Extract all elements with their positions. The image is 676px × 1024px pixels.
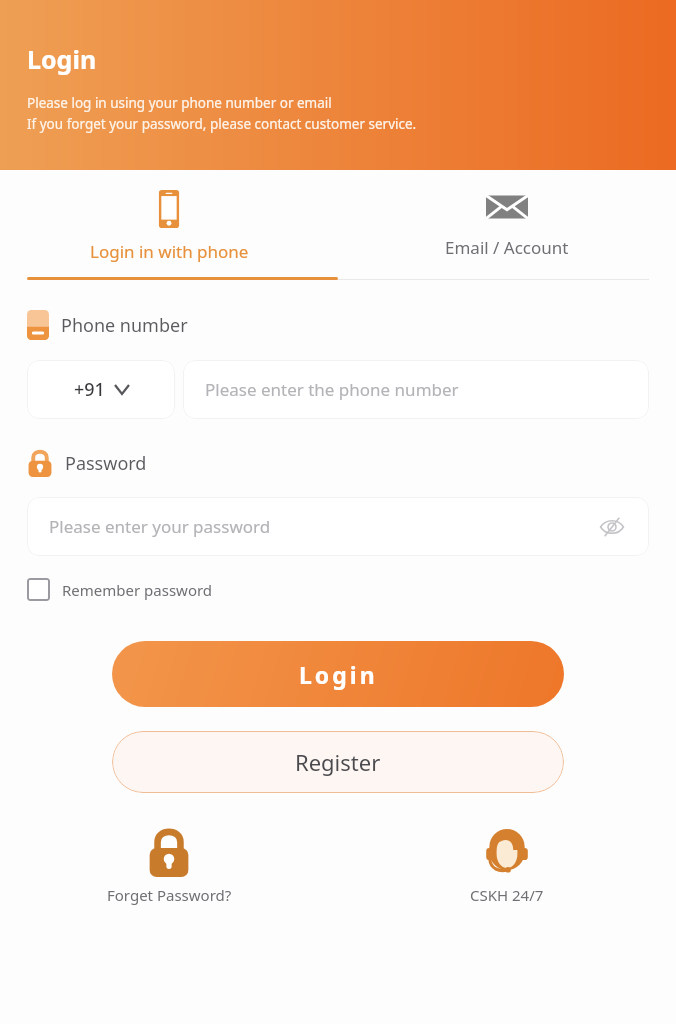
staticText: +91 xyxy=(74,377,105,402)
button[interactable]: Register xyxy=(112,731,564,793)
staticText: Phone number xyxy=(61,313,188,338)
staticText: Register xyxy=(295,747,381,777)
button[interactable]: Email / Account xyxy=(338,184,676,265)
staticText: Remember password xyxy=(62,580,213,600)
staticText: CSKH 24/7 xyxy=(470,885,544,905)
button[interactable]: Remember password xyxy=(27,578,213,601)
staticText: Please log in using your phone number or… xyxy=(27,94,332,112)
staticText: Please enter the phone number xyxy=(205,378,459,401)
button[interactable]: Forget Password? xyxy=(0,827,338,905)
staticText: Login xyxy=(299,659,378,690)
button[interactable]: Show password xyxy=(597,512,627,542)
staticText: Forget Password? xyxy=(107,885,232,905)
staticText: Password xyxy=(65,451,147,476)
button[interactable]: Login in with phone xyxy=(0,184,338,269)
button[interactable]: CSKH 24/7 xyxy=(338,827,676,905)
button[interactable]: Login xyxy=(112,641,564,707)
staticText: Login in with phone xyxy=(90,240,249,263)
staticText: Login xyxy=(27,42,97,76)
button[interactable]: +91 xyxy=(27,360,175,419)
staticText: Please enter your password xyxy=(49,515,271,538)
button[interactable]: Please enter the phone number xyxy=(183,360,649,419)
button[interactable]: Please enter your password xyxy=(27,497,649,556)
staticText: If you forget your password, please cont… xyxy=(27,115,417,133)
staticText: Email / Account xyxy=(445,236,569,259)
